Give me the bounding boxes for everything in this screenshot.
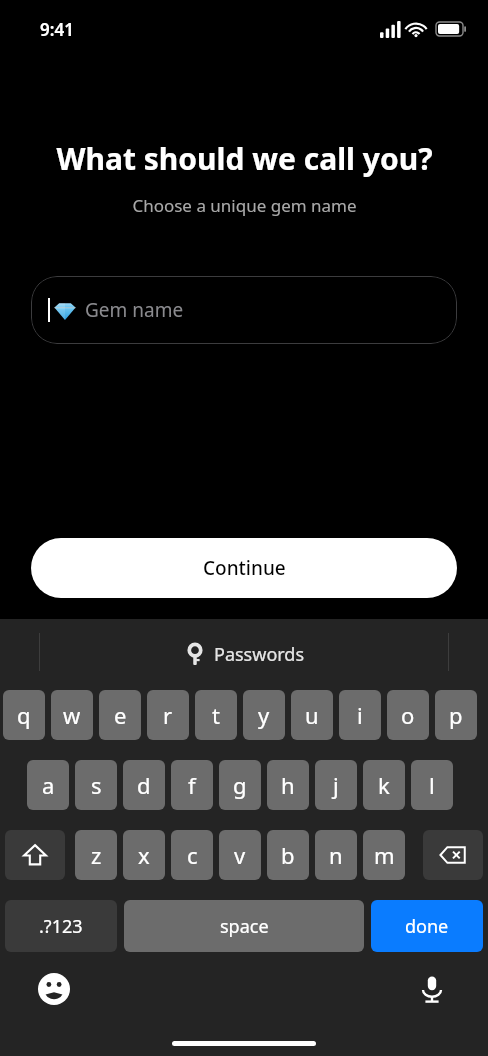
button[interactable]: s [75,760,117,810]
button[interactable]: d [123,760,165,810]
staticText: o [401,700,415,730]
staticText: 9:41 [40,18,74,41]
button[interactable]: c [171,830,213,880]
staticText: .?123 [39,914,83,939]
button[interactable]: Passwords [184,642,305,667]
button[interactable]: q [3,690,45,740]
button[interactable]: j [315,760,357,810]
staticText: Gem name [85,297,184,323]
staticText: i [357,700,363,730]
button[interactable]: x [123,830,165,880]
button[interactable]: i [339,690,381,740]
button[interactable]: n [315,830,357,880]
staticText: q [17,700,31,730]
staticText: l [429,770,435,800]
staticText: r [163,700,173,730]
button[interactable]: w [51,690,93,740]
staticText: u [305,700,319,730]
button[interactable]: g [219,760,261,810]
staticText: j [333,770,339,800]
button[interactable]: Continue [31,538,457,598]
button[interactable]: r [147,690,189,740]
staticText: v [234,840,246,870]
button[interactable]: p [435,690,477,740]
staticText: What should we call you? [56,138,433,179]
staticText: x [138,840,150,870]
staticText: z [91,840,102,870]
staticText: d [137,770,151,800]
button[interactable]: done [371,900,483,952]
button[interactable]: Dictation [410,967,454,1011]
staticText: s [91,770,102,800]
staticText: m [374,840,395,870]
staticText: Choose a unique gem name [132,194,357,217]
staticText: f [188,770,196,800]
staticText: t [212,700,220,730]
button[interactable]: k [363,760,405,810]
button[interactable]: Backspace [423,830,483,880]
button[interactable]: m [363,830,405,880]
button[interactable]: y [243,690,285,740]
staticText: done [405,914,449,939]
button[interactable]: f [171,760,213,810]
staticText: k [378,770,390,800]
button[interactable]: Gem name [31,276,457,344]
button[interactable]: .?123 [5,900,117,952]
button[interactable]: a [27,760,69,810]
button[interactable]: Shift [5,830,65,880]
staticText: e [114,700,127,730]
button[interactable]: z [75,830,117,880]
staticText: a [42,770,55,800]
staticText: b [281,840,295,870]
button[interactable]: o [387,690,429,740]
button[interactable]: Emoji keyboard [32,967,76,1011]
button[interactable]: h [267,760,309,810]
staticText: w [63,700,81,730]
button[interactable]: t [195,690,237,740]
button[interactable]: space [124,900,364,952]
button[interactable]: b [267,830,309,880]
staticText: h [281,770,295,800]
button[interactable]: e [99,690,141,740]
staticText: c [187,840,198,870]
staticText: y [258,700,270,730]
staticText: g [233,770,247,800]
button[interactable]: v [219,830,261,880]
staticText: n [329,840,343,870]
button[interactable]: l [411,760,453,810]
staticText: space [220,914,269,939]
staticText: Passwords [214,642,305,667]
button[interactable]: u [291,690,333,740]
staticText: p [449,700,463,730]
staticText: Continue [203,555,286,581]
